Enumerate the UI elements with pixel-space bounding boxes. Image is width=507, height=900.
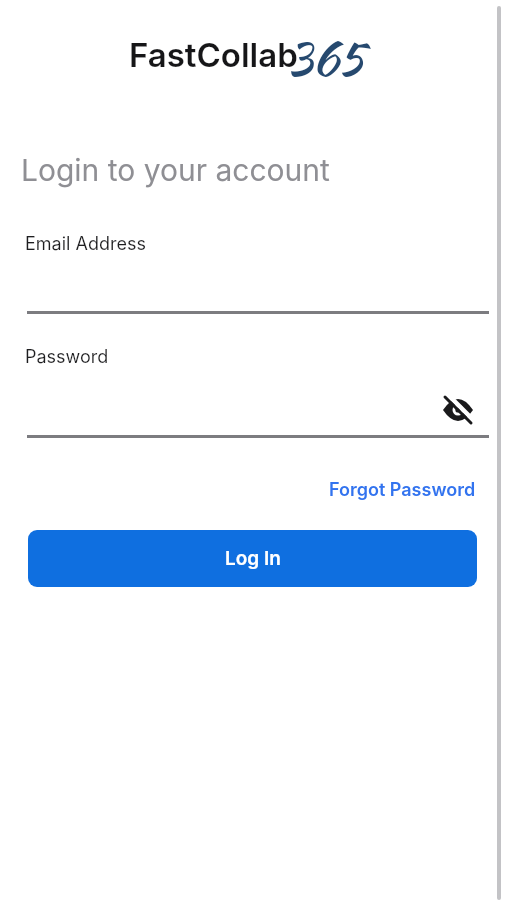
- staticText: 365: [287, 25, 364, 92]
- button[interactable]: Log In: [28, 530, 477, 587]
- staticText: FastCollab: [129, 35, 298, 75]
- button[interactable]: [27, 262, 489, 314]
- staticText: Login to your account: [21, 152, 330, 188]
- button[interactable]: [27, 386, 489, 438]
- button[interactable]: Forgot Password: [329, 479, 476, 501]
- staticText: Log In: [225, 547, 281, 570]
- staticText: Email Address: [25, 233, 146, 255]
- button[interactable]: [438, 392, 478, 428]
- staticText: Password: [25, 346, 109, 368]
